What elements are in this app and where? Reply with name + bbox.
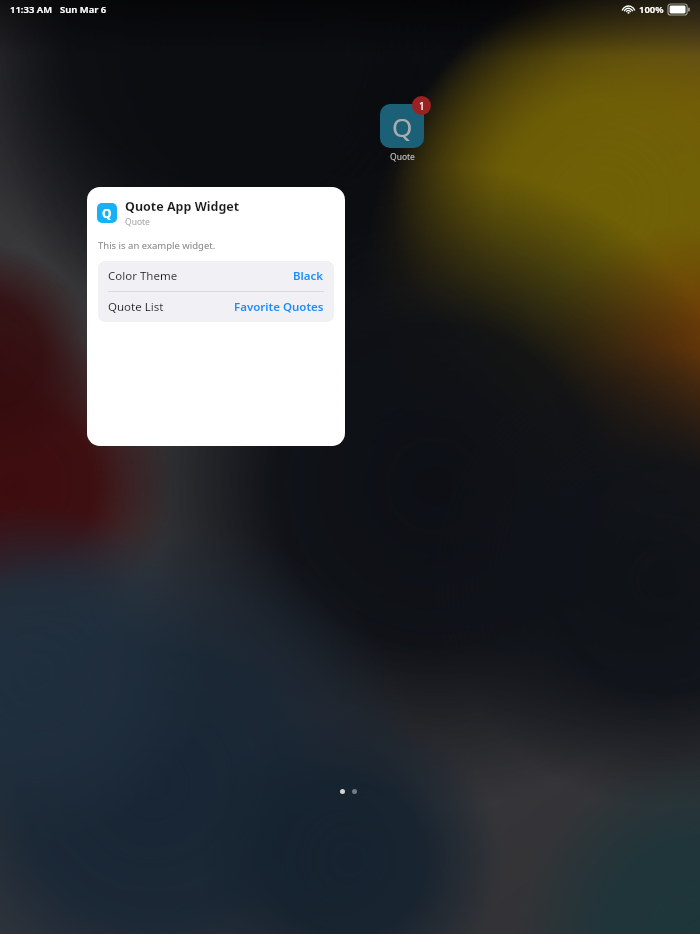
staticText: Q	[392, 109, 413, 144]
staticText: 1	[419, 99, 425, 113]
staticText: Sun Mar 6	[60, 3, 107, 16]
staticText: Q	[102, 205, 112, 221]
staticText: Black	[293, 268, 324, 284]
staticText: 100%	[639, 3, 664, 16]
staticText: Quote	[125, 216, 150, 228]
staticText: 11:33 AM	[10, 3, 53, 16]
staticText: This is an example widget.	[98, 239, 216, 252]
button[interactable]: Quote app	[380, 104, 424, 148]
staticText: Quote	[390, 151, 415, 163]
button[interactable]: Color Theme	[98, 261, 334, 291]
staticText: Color Theme	[108, 268, 178, 284]
staticText: Quote List	[108, 299, 164, 315]
staticText: Favorite Quotes	[234, 299, 324, 315]
button[interactable]: Quote List	[98, 292, 334, 322]
staticText: Quote App Widget	[125, 198, 240, 215]
